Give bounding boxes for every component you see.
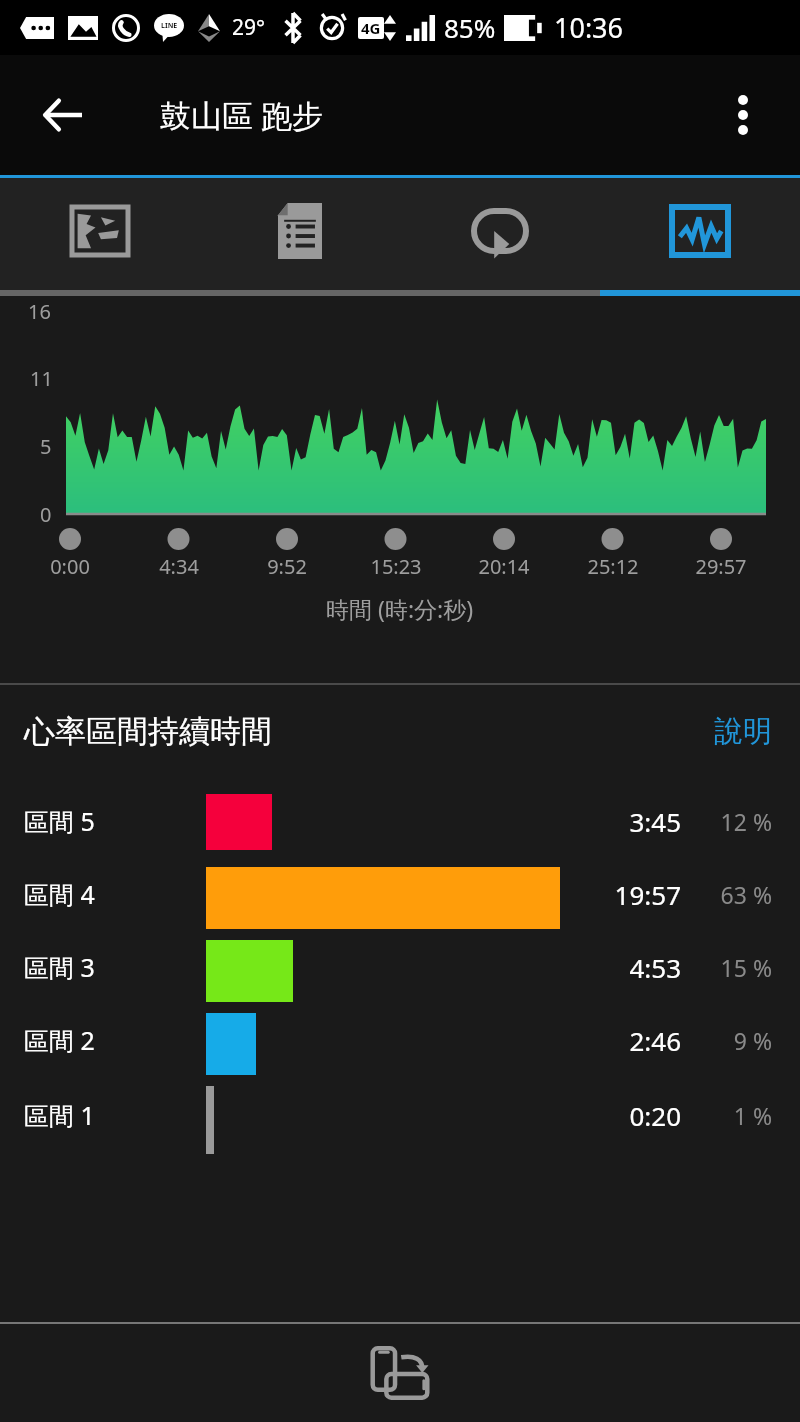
staticText: 3:45: [521, 804, 681, 839]
staticText: 時間 (時:分:秒): [326, 593, 474, 624]
staticText: 區間 5: [24, 804, 95, 838]
staticText: 4:34: [134, 553, 224, 580]
button[interactable]: 區間 2: [0, 1013, 800, 1086]
staticText: 19:57: [521, 877, 681, 912]
button[interactable]: 區間 3: [0, 940, 800, 1013]
button[interactable]: Back: [26, 79, 98, 151]
button[interactable]: Charts: [600, 178, 800, 296]
button[interactable]: Map: [0, 178, 200, 296]
staticText: 1 %: [652, 1100, 772, 1131]
staticText: 4:53: [521, 950, 681, 985]
staticText: 15 %: [652, 952, 772, 983]
staticText: 0:20: [521, 1098, 681, 1133]
staticText: 15:23: [351, 553, 441, 580]
staticText: 5: [40, 433, 52, 460]
staticText: 29°: [232, 13, 266, 42]
staticText: 區間 2: [24, 1023, 95, 1057]
staticText: 10:36: [554, 9, 624, 46]
staticText: 區間 3: [24, 950, 95, 984]
staticText: 2:46: [521, 1023, 681, 1058]
button[interactable]: 區間 4: [0, 867, 800, 940]
staticText: 20:14: [459, 553, 549, 580]
staticText: 11: [30, 365, 53, 392]
staticText: 12 %: [652, 806, 772, 837]
staticText: 鼓山區 跑步: [160, 94, 324, 136]
button[interactable]: 說明: [710, 707, 776, 756]
button[interactable]: 區間 1: [0, 1086, 800, 1162]
staticText: 0: [40, 501, 52, 528]
button[interactable]: Laps: [400, 178, 600, 296]
button[interactable]: 區間 5: [0, 794, 800, 867]
staticText: 85%: [444, 10, 496, 45]
staticText: 9:52: [242, 553, 332, 580]
staticText: 區間 1: [24, 1098, 95, 1132]
staticText: 9 %: [652, 1025, 772, 1056]
staticText: 心率區間持續時間: [24, 712, 272, 751]
staticText: 0:00: [25, 553, 115, 580]
staticText: 說明: [714, 713, 772, 750]
staticText: 29:57: [676, 553, 766, 580]
staticText: 63 %: [652, 879, 772, 910]
staticText: 16: [28, 298, 51, 325]
staticText: 25:12: [568, 553, 658, 580]
button[interactable]: Details: [200, 178, 400, 296]
button[interactable]: Rotate screen: [352, 1325, 448, 1421]
staticText: LINE: [161, 21, 178, 31]
staticText: 區間 4: [24, 877, 95, 911]
button[interactable]: More options: [710, 82, 776, 148]
staticText: 4G: [361, 18, 381, 38]
